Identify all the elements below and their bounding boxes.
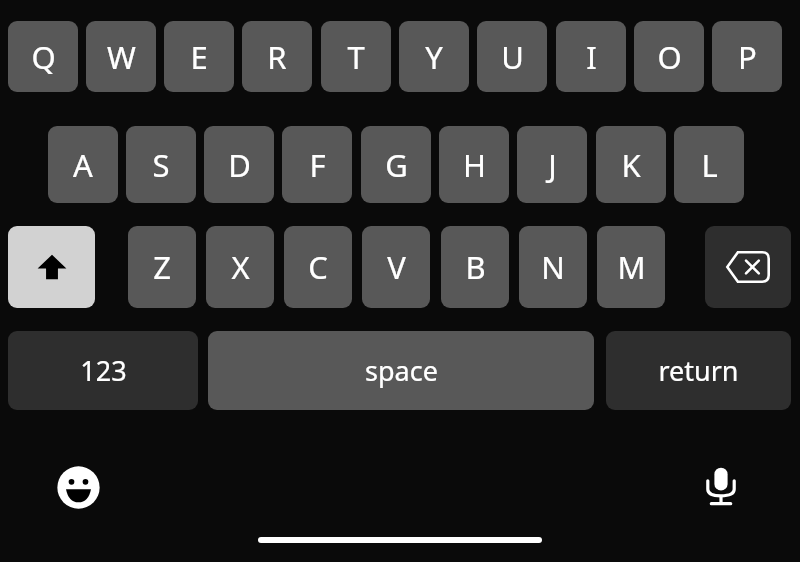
staticText: W: [107, 36, 136, 78]
staticText: Y: [425, 36, 443, 78]
button[interactable]: G: [361, 126, 431, 203]
staticText: Q: [31, 36, 56, 78]
staticText: V: [387, 246, 406, 288]
staticText: L: [701, 144, 718, 186]
staticText: H: [463, 144, 486, 186]
button[interactable]: W: [86, 21, 156, 92]
button[interactable]: T: [321, 21, 391, 92]
staticText: space: [365, 352, 438, 389]
button[interactable]: E: [164, 21, 234, 92]
staticText: N: [541, 246, 565, 288]
staticText: U: [501, 36, 524, 78]
staticText: C: [308, 246, 328, 288]
button[interactable]: P: [712, 21, 782, 92]
staticText: J: [548, 144, 557, 186]
button[interactable]: Q: [8, 21, 78, 92]
button[interactable]: R: [242, 21, 312, 92]
staticText: F: [309, 144, 326, 186]
button[interactable]: Z: [128, 226, 196, 308]
button[interactable]: space: [208, 331, 594, 410]
button[interactable]: M: [597, 226, 665, 308]
button[interactable]: B: [441, 226, 509, 308]
staticText: T: [347, 36, 365, 78]
staticText: 123: [80, 352, 127, 389]
staticText: D: [228, 144, 251, 186]
staticText: I: [586, 36, 597, 78]
button[interactable]: U: [477, 21, 547, 92]
button[interactable]: Shift: [8, 226, 95, 308]
staticText: return: [658, 352, 739, 389]
staticText: Z: [153, 246, 171, 288]
button[interactable]: O: [634, 21, 704, 92]
staticText: O: [657, 36, 682, 78]
button[interactable]: Voice input: [693, 459, 749, 515]
button[interactable]: H: [439, 126, 509, 203]
button[interactable]: A: [48, 126, 118, 203]
staticText: A: [73, 144, 93, 186]
button[interactable]: K: [596, 126, 666, 203]
staticText: K: [621, 144, 641, 186]
button[interactable]: S: [126, 126, 196, 203]
button[interactable]: V: [362, 226, 430, 308]
button[interactable]: D: [204, 126, 274, 203]
button[interactable]: Emoji keyboard: [50, 459, 106, 515]
staticText: P: [738, 36, 757, 78]
staticText: R: [267, 36, 287, 78]
staticText: S: [152, 144, 170, 186]
button[interactable]: L: [674, 126, 744, 203]
button[interactable]: F: [282, 126, 352, 203]
staticText: M: [617, 246, 646, 288]
button[interactable]: 123: [8, 331, 198, 410]
staticText: B: [465, 246, 486, 288]
button[interactable]: X: [206, 226, 274, 308]
button[interactable]: Backspace: [705, 226, 791, 308]
button[interactable]: return: [606, 331, 791, 410]
button[interactable]: C: [284, 226, 352, 308]
staticText: E: [190, 36, 208, 78]
staticText: X: [231, 246, 250, 288]
staticText: G: [385, 144, 408, 186]
button[interactable]: Y: [399, 21, 469, 92]
button[interactable]: N: [519, 226, 587, 308]
button[interactable]: J: [517, 126, 587, 203]
button[interactable]: I: [556, 21, 626, 92]
